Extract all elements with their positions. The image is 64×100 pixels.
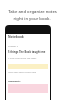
staticText: Chapter 4	[8, 45, 19, 48]
staticText: 5 things The Book taught me	[8, 50, 46, 54]
staticText: right in your book.	[13, 16, 51, 22]
staticText: More text about notes here	[8, 71, 37, 74]
staticText: Take and organize notes	[8, 9, 57, 15]
staticText: A little note about the ideas	[8, 57, 37, 60]
staticText: Highlights	[8, 79, 21, 82]
staticText: Notebook	[8, 35, 24, 39]
